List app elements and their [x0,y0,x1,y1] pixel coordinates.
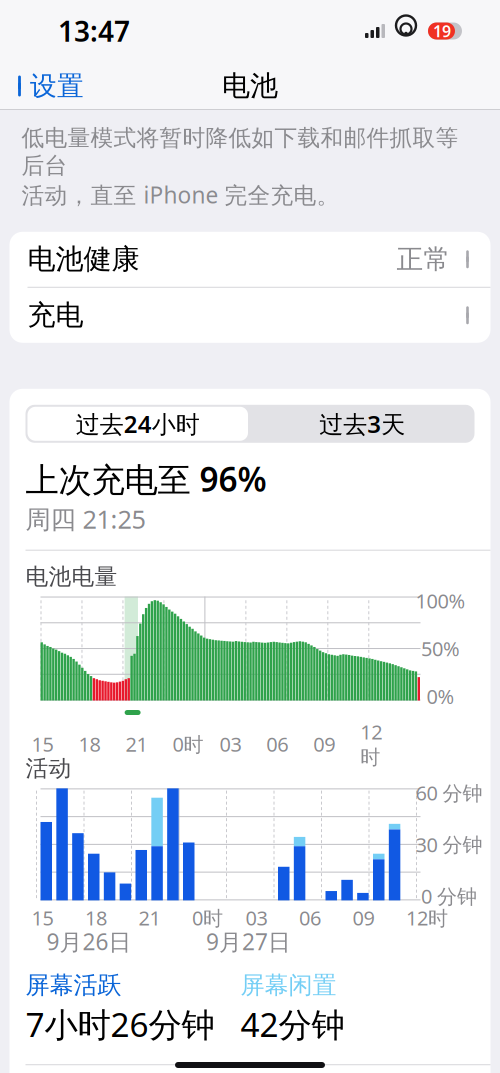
staticText: 18 [78,731,100,757]
staticText: 42分钟 [240,1002,344,1046]
staticText: 0% [426,683,454,710]
staticText: 13:47 [58,12,130,50]
staticText: 0 分钟 [421,883,477,909]
staticText: 100% [415,587,465,614]
staticText: 03 [245,904,267,931]
staticText: 19 [433,20,451,42]
staticText: 过去3天 [319,408,405,440]
button[interactable]: 设置 [0,64,84,108]
staticText: 屏幕闲置 [240,970,336,1000]
staticText: 09 [352,904,374,931]
staticText: 18 [85,904,107,931]
staticText: 03 [219,731,241,757]
staticText: 充电 [27,298,83,332]
staticText: 上次充电至 96% [25,457,266,501]
staticText: 9月27日 [206,926,291,956]
staticText: 06 [299,904,321,931]
staticText: 正常 [396,243,450,276]
staticText: 09 [313,731,335,757]
staticText: 周四 21:25 [25,502,145,536]
staticText: 0时 [192,904,223,931]
staticText: 21 [138,904,160,931]
staticText: 过去24小时 [76,408,200,440]
staticText: 15 [31,731,53,757]
staticText: 设置 [30,70,84,102]
staticText: 50% [421,635,460,662]
staticText: 30 分钟 [415,831,482,858]
button[interactable]: 电池健康 [9,232,490,288]
staticText: 21 [125,731,147,757]
staticText: 7小时26分钟 [25,1002,214,1046]
staticText: 电池 [222,69,278,103]
staticText: 15 [31,904,53,931]
button[interactable]: 过去3天 [250,405,474,443]
staticText: 9月26日 [46,926,131,956]
staticText: 活动 [25,754,71,782]
staticText: 12时 [406,904,448,931]
staticText: 0时 [172,731,203,757]
staticText: 12时 [360,718,382,770]
staticText: 电池电量 [25,563,117,590]
staticText: 电池健康 [27,242,139,276]
staticText: 屏幕活跃 [25,970,121,1000]
staticText: 低电量模式将暂时降低如下载和邮件抓取等后台 活动，直至 iPhone 完全充电。 [21,124,458,210]
button[interactable]: 过去24小时 [25,405,250,443]
button[interactable]: 充电 [9,288,490,343]
staticText: 60 分钟 [415,779,482,806]
staticText: 06 [266,731,288,757]
